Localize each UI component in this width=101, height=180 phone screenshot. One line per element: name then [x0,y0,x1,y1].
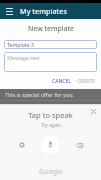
button[interactable]: This is special offer for you. [0,89,101,100]
button[interactable]: Delete [72,138,86,152]
staticText: CANCEL [52,78,71,85]
button[interactable]: Voice input settings [15,138,29,152]
staticText: Try again [41,122,61,128]
button[interactable]: Tap to speak [41,135,60,154]
staticText: Template 3 [7,41,34,48]
staticText: Google [39,167,63,177]
button[interactable]: Message text [4,52,97,72]
staticText: CREATE [77,78,95,85]
button[interactable]: CREATE [74,76,98,87]
button[interactable]: CANCEL [49,76,74,87]
button[interactable]: Open navigation menu [4,6,15,17]
staticText: Message text [7,54,40,61]
button[interactable]: Close voice input [89,107,98,116]
button[interactable]: Template 3 [4,40,97,49]
staticText: New template [28,24,74,34]
staticText: This is special offer for you. [5,91,74,98]
staticText: Tap to speak [28,110,73,120]
staticText: My templates [20,6,67,16]
